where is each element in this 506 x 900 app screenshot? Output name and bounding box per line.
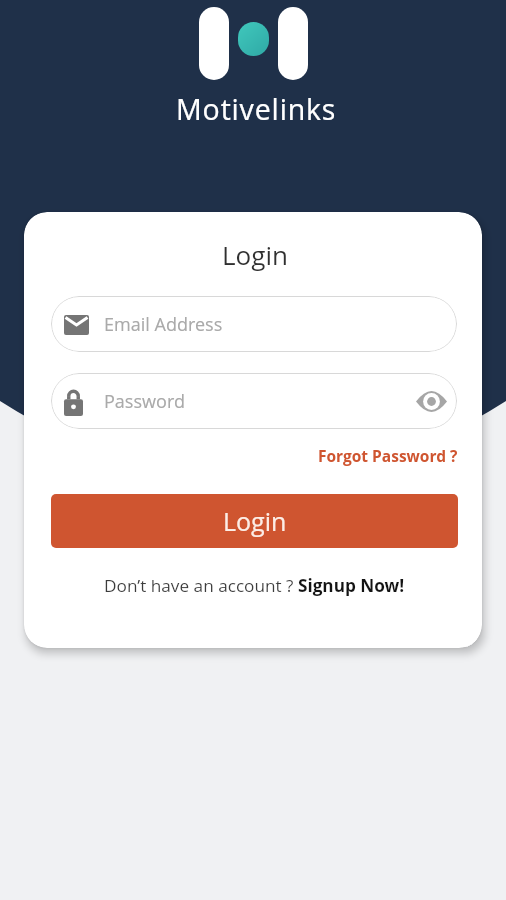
staticText: Motivelinks — [176, 90, 337, 129]
button[interactable]: Password — [51, 373, 457, 429]
button[interactable]: Don’t have an account ? Signup Now! — [104, 574, 405, 597]
staticText: Don’t have an account ? Signup Now! — [104, 574, 405, 597]
button[interactable]: Email Address — [51, 296, 457, 352]
staticText: Forgot Password ? — [318, 445, 458, 466]
button[interactable]: Show password — [407, 373, 455, 429]
staticText: Password — [104, 389, 185, 414]
staticText: Email Address — [104, 312, 223, 337]
button[interactable]: Login — [51, 494, 458, 548]
staticText: Login — [223, 504, 287, 538]
button[interactable]: Forgot Password ? — [318, 445, 458, 466]
staticText: Login — [222, 237, 288, 272]
